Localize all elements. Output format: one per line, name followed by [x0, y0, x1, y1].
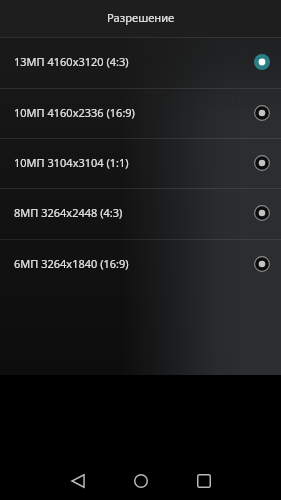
button[interactable]: 13МП 4160x3120 (4:3) — [0, 37, 281, 87]
staticText: 6МП 3264x1840 (16:9) — [14, 256, 253, 271]
staticText: Разрешение — [107, 10, 175, 25]
button[interactable]: Back — [46, 450, 109, 500]
staticText: 8МП 3264x2448 (4:3) — [14, 205, 253, 220]
button[interactable]: 10МП 3104x3104 (1:1) — [0, 138, 281, 188]
button[interactable]: 8МП 3264x2448 (4:3) — [0, 188, 281, 238]
button[interactable]: 10МП 4160x2336 (16:9) — [0, 88, 281, 138]
staticText: 10МП 3104x3104 (1:1) — [14, 155, 253, 170]
button[interactable]: Recents — [172, 450, 235, 500]
staticText: 13МП 4160x3120 (4:3) — [14, 54, 253, 69]
staticText: 10МП 4160x2336 (16:9) — [14, 105, 253, 120]
button[interactable]: 6МП 3264x1840 (16:9) — [0, 239, 281, 289]
button[interactable]: Home — [109, 450, 172, 500]
